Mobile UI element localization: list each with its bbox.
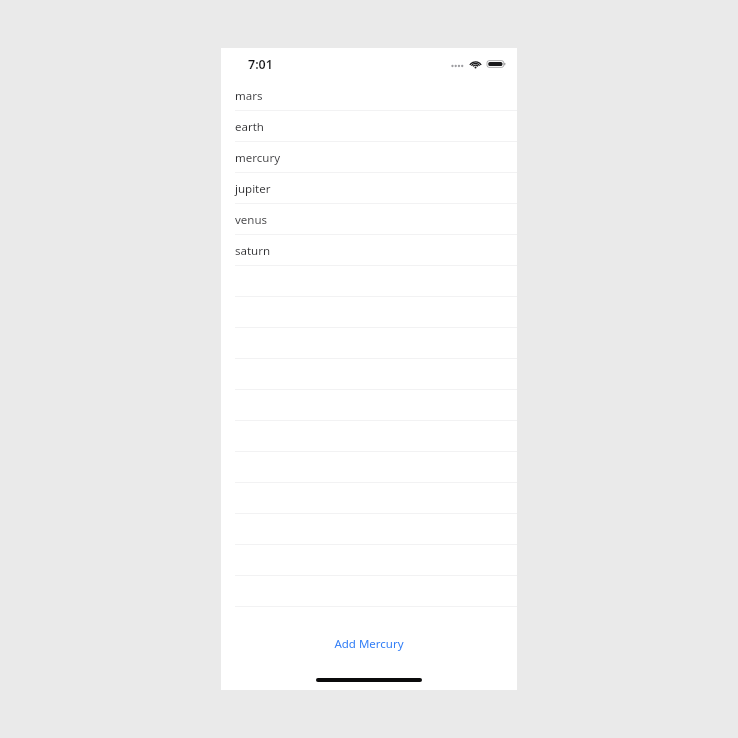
staticText: mercury — [235, 150, 280, 166]
staticText: saturn — [235, 243, 271, 259]
staticText: Add Mercury — [334, 636, 404, 652]
staticText: venus — [235, 212, 268, 228]
staticText: earth — [235, 119, 264, 135]
staticText: mars — [235, 88, 263, 104]
button[interactable]: mars — [221, 80, 517, 111]
staticText: jupiter — [235, 181, 271, 197]
button[interactable]: saturn — [221, 235, 517, 266]
button[interactable]: jupiter — [221, 173, 517, 204]
button[interactable]: Add Mercury — [221, 626, 517, 662]
button[interactable]: mercury — [221, 142, 517, 173]
button[interactable]: venus — [221, 204, 517, 235]
button[interactable]: earth — [221, 111, 517, 142]
staticText: 7:01 — [248, 56, 273, 73]
